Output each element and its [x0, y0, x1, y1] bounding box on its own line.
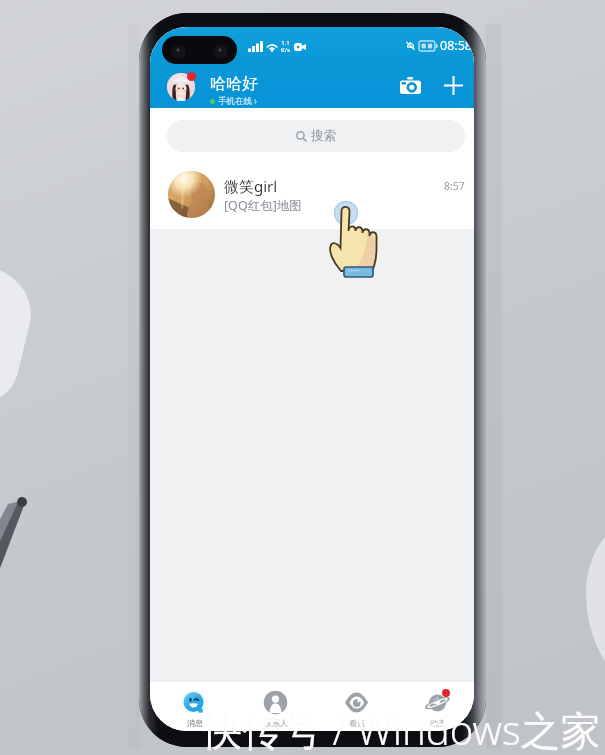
staticText: 搜索 [311, 128, 336, 144]
staticText: 08:58 [440, 37, 472, 54]
button[interactable]: 看点 [316, 682, 397, 728]
staticText: 联系人 [264, 718, 288, 728]
staticText: 快传号 / Windows之家 [202, 702, 601, 755]
staticText: 微笑girl [224, 176, 278, 196]
staticText: 哈哈好 [210, 74, 258, 94]
staticText: 看点 [349, 718, 365, 728]
staticText: 手机在线 › [218, 95, 257, 107]
staticText: 消息 [187, 718, 203, 728]
staticText: 动态 [430, 718, 446, 728]
button[interactable]: 微笑girl [150, 164, 474, 229]
button[interactable]: 消息 [154, 682, 235, 728]
button[interactable]: 动态 [397, 682, 474, 728]
button[interactable]: 联系人 [235, 682, 316, 728]
staticText: 8:57 [444, 179, 465, 193]
button[interactable]: Camera [393, 68, 427, 102]
button[interactable]: Add [436, 68, 470, 102]
staticText: 1.1 K/s [281, 39, 290, 53]
button[interactable]: 搜索 [167, 120, 465, 152]
staticText: [QQ红包]地图 [224, 197, 302, 214]
button[interactable]: Profile [167, 73, 197, 103]
